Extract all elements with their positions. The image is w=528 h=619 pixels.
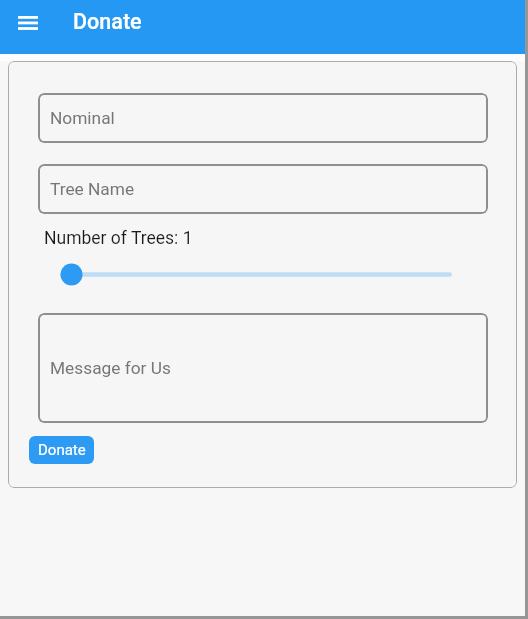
staticText: Nominal xyxy=(50,108,115,128)
button[interactable]: Nominal xyxy=(38,93,488,143)
button[interactable]: Donate xyxy=(29,436,94,464)
staticText: Number of Trees: 1 xyxy=(44,228,193,249)
staticText: Message for Us xyxy=(50,358,171,378)
button[interactable]: Tree Name xyxy=(38,164,488,214)
button[interactable] xyxy=(9,4,47,42)
button[interactable] xyxy=(38,258,478,290)
button[interactable]: Message for Us xyxy=(38,313,488,423)
staticText: Tree Name xyxy=(50,179,135,199)
staticText: Donate xyxy=(38,441,86,459)
staticText: Donate xyxy=(73,9,142,34)
